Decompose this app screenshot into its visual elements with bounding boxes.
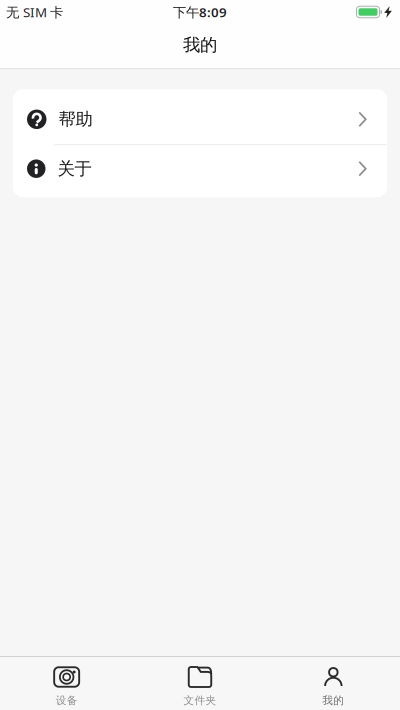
staticText: 设备 [56, 694, 78, 707]
button[interactable]: 关于 [13, 145, 387, 190]
staticText: 我的 [322, 694, 344, 707]
staticText: 帮助 [58, 109, 92, 130]
button[interactable]: 帮助 [13, 92, 387, 144]
staticText: 文件夹 [183, 694, 216, 707]
button[interactable]: 文件夹 [133, 657, 267, 710]
button[interactable]: 我的 [267, 657, 400, 710]
button[interactable]: 设备 [0, 657, 133, 710]
staticText: 无 SIM 卡 [6, 3, 63, 21]
staticText: 下午8:09 [173, 3, 227, 21]
staticText: 关于 [57, 158, 91, 179]
staticText: 我的 [183, 34, 217, 56]
